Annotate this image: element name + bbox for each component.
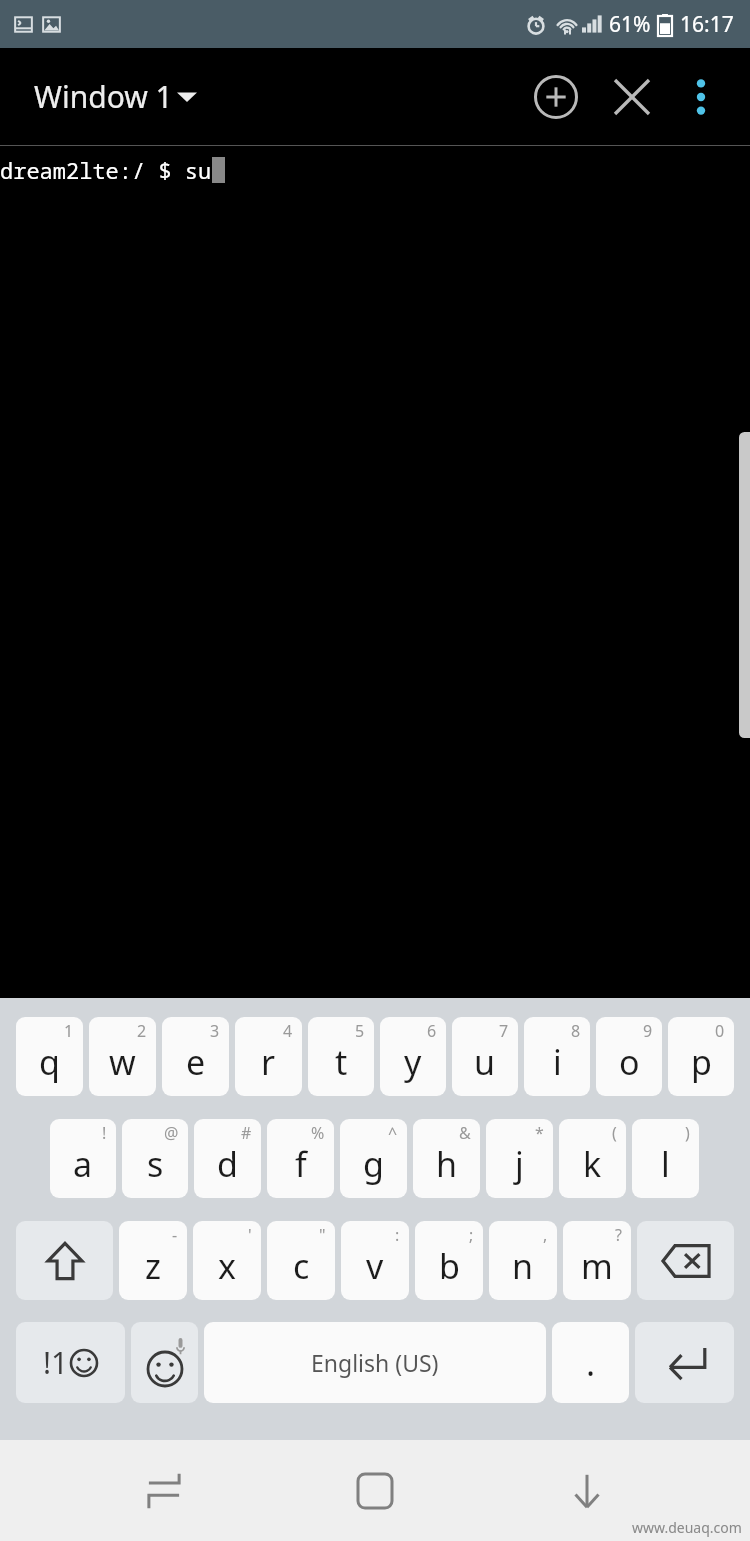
button[interactable]: "	[267, 1221, 335, 1300]
button[interactable]: 8	[524, 1017, 590, 1096]
button[interactable]: ,	[489, 1221, 557, 1300]
button[interactable]: English (US)	[204, 1322, 546, 1403]
button[interactable]: New window	[518, 59, 594, 135]
staticText: English (US)	[311, 1347, 439, 1378]
button[interactable]: !	[50, 1119, 116, 1198]
button[interactable]: :	[341, 1221, 409, 1300]
staticText: 5	[355, 1020, 365, 1042]
button[interactable]: #	[194, 1119, 261, 1198]
staticText: l	[661, 1141, 670, 1187]
staticText: f	[295, 1141, 307, 1187]
staticText: 9	[643, 1020, 653, 1042]
staticText: o	[619, 1039, 640, 1085]
button[interactable]: More options	[670, 66, 732, 128]
staticText: '	[248, 1224, 252, 1246]
button[interactable]: Close window	[594, 59, 670, 135]
button[interactable]: Home	[327, 1443, 423, 1539]
staticText: 4	[283, 1020, 293, 1042]
button[interactable]: &	[413, 1119, 480, 1198]
staticText: y	[404, 1039, 422, 1085]
staticText: ?	[615, 1224, 622, 1246]
staticText: ;	[469, 1224, 474, 1246]
button[interactable]: *	[486, 1119, 553, 1198]
staticText: "	[319, 1224, 326, 1246]
button[interactable]: )	[632, 1119, 699, 1198]
staticText: -	[172, 1224, 178, 1246]
staticText: x	[218, 1243, 236, 1289]
staticText: 3	[210, 1020, 220, 1042]
staticText: z	[145, 1243, 161, 1289]
staticText: Window 1	[34, 76, 173, 117]
staticText: ,	[543, 1224, 548, 1246]
staticText: #	[241, 1122, 252, 1144]
staticText: 1	[64, 1020, 74, 1042]
button[interactable]: ^	[340, 1119, 407, 1198]
staticText: i	[553, 1039, 562, 1085]
staticText: &	[459, 1122, 471, 1144]
button[interactable]: Symbols	[16, 1322, 125, 1403]
staticText: *	[535, 1122, 544, 1144]
staticText: ^	[388, 1122, 398, 1144]
button[interactable]: .	[552, 1322, 629, 1403]
staticText: 6	[427, 1020, 437, 1042]
staticText: e	[186, 1039, 206, 1085]
staticText: a	[73, 1141, 93, 1187]
staticText: .	[586, 1340, 596, 1386]
staticText: )	[685, 1122, 690, 1144]
staticText: 0	[715, 1020, 725, 1042]
staticText: 16:17	[680, 10, 734, 39]
staticText: c	[293, 1243, 310, 1289]
button[interactable]: Hide keyboard	[539, 1443, 635, 1539]
staticText: @	[164, 1122, 179, 1144]
staticText: k	[583, 1141, 602, 1187]
button[interactable]: 6	[380, 1017, 446, 1096]
staticText: r	[261, 1039, 276, 1085]
staticText: :	[395, 1224, 400, 1246]
button[interactable]: @	[122, 1119, 188, 1198]
button[interactable]: Emoji and voice	[131, 1322, 198, 1403]
button[interactable]: 3	[162, 1017, 229, 1096]
button[interactable]: 1	[16, 1017, 83, 1096]
staticText: w	[109, 1039, 136, 1085]
button[interactable]: Backspace	[637, 1221, 734, 1300]
button[interactable]: 0	[668, 1017, 734, 1096]
button[interactable]: -	[119, 1221, 187, 1300]
staticText: !	[102, 1122, 107, 1144]
button[interactable]: Enter	[635, 1322, 734, 1403]
button[interactable]: 2	[89, 1017, 156, 1096]
button[interactable]: 7	[452, 1017, 518, 1096]
button[interactable]: ;	[415, 1221, 483, 1300]
staticText: d	[217, 1141, 238, 1187]
button[interactable]: Window 1	[34, 76, 197, 117]
staticText: !1	[43, 1342, 69, 1383]
button[interactable]: 9	[596, 1017, 662, 1096]
button[interactable]: %	[267, 1119, 334, 1198]
staticText: 61%	[609, 10, 651, 39]
button[interactable]: (	[559, 1119, 626, 1198]
staticText: t	[335, 1039, 348, 1085]
button[interactable]: '	[193, 1221, 261, 1300]
staticText: n	[512, 1243, 534, 1289]
staticText: g	[363, 1141, 384, 1187]
staticText: www.deuaq.com	[632, 1518, 742, 1537]
staticText: b	[439, 1243, 460, 1289]
staticText: u	[474, 1039, 496, 1085]
button[interactable]: 5	[308, 1017, 374, 1096]
staticText: 8	[571, 1020, 581, 1042]
staticText: h	[436, 1141, 458, 1187]
staticText: (	[612, 1122, 617, 1144]
staticText: 2	[137, 1020, 147, 1042]
staticText: 7	[499, 1020, 509, 1042]
button[interactable]: ?	[563, 1221, 631, 1300]
button[interactable]: Shift	[16, 1221, 113, 1300]
staticText: q	[39, 1039, 60, 1085]
staticText: v	[366, 1243, 384, 1289]
staticText: j	[515, 1141, 524, 1187]
staticText: %	[311, 1122, 325, 1144]
staticText: m	[581, 1243, 613, 1289]
staticText: p	[691, 1039, 712, 1085]
button[interactable]: 4	[235, 1017, 302, 1096]
button[interactable]: Recents	[116, 1443, 212, 1539]
staticText: s	[147, 1141, 164, 1187]
staticText: dream2lte:/ $ su	[0, 155, 212, 185]
